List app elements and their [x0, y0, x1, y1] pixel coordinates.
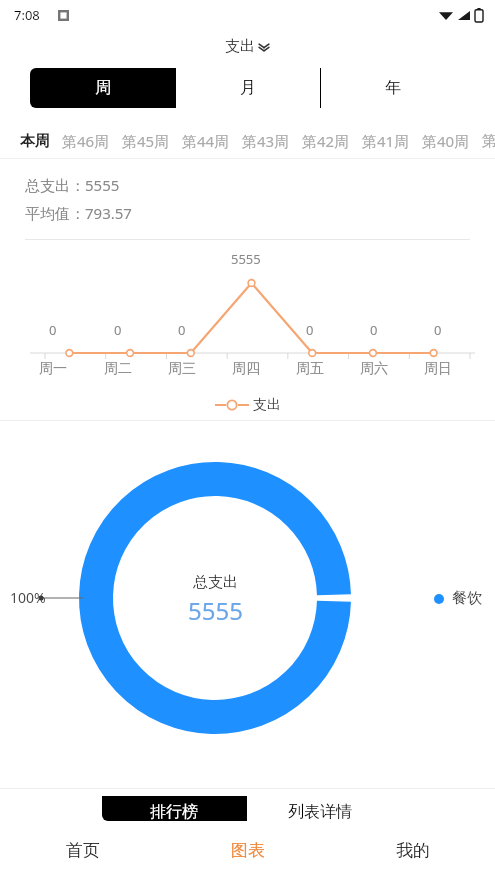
staticText: 第45周: [122, 131, 170, 151]
staticText: 周二: [104, 360, 132, 378]
staticText: 列表详情: [288, 802, 352, 821]
button[interactable]: 第45周: [116, 124, 176, 158]
staticText: 周三: [168, 360, 196, 378]
button[interactable]: 首页: [0, 821, 165, 880]
staticText: 周五: [296, 360, 324, 378]
staticText: 第: [482, 132, 489, 151]
button[interactable]: 第43周: [236, 124, 296, 158]
staticText: 第43周: [242, 131, 290, 151]
staticText: 0: [178, 321, 186, 339]
button[interactable]: 第46周: [56, 124, 116, 158]
staticText: 图表: [231, 840, 265, 861]
button[interactable]: 我的: [330, 821, 495, 880]
staticText: 0: [370, 321, 378, 339]
staticText: 周一: [39, 360, 67, 378]
staticText: 排行榜: [150, 802, 198, 821]
button[interactable]: 餐饮: [434, 589, 482, 608]
staticText: 0: [114, 321, 122, 339]
staticText: 第40周: [422, 131, 470, 151]
staticText: 5555: [231, 250, 261, 268]
staticText: 周六: [360, 360, 388, 378]
staticText: 首页: [66, 840, 100, 861]
button[interactable]: 列表详情: [247, 796, 392, 821]
button[interactable]: 支出: [215, 396, 281, 414]
staticText: 100%: [10, 588, 46, 607]
button[interactable]: 第42周: [296, 124, 356, 158]
staticText: 餐饮: [452, 589, 482, 608]
button[interactable]: 第41周: [356, 124, 416, 158]
staticText: 0: [49, 321, 57, 339]
staticText: 周: [95, 78, 111, 98]
button[interactable]: 本周: [14, 124, 56, 158]
button[interactable]: 年: [321, 68, 465, 108]
staticText: 支出: [225, 37, 255, 56]
staticText: 5555: [188, 594, 243, 627]
staticText: 第42周: [302, 131, 350, 151]
button[interactable]: 月: [176, 68, 320, 108]
button[interactable]: 排行榜: [102, 796, 246, 821]
button[interactable]: 第: [476, 124, 495, 158]
staticText: 总支出: [193, 573, 238, 592]
staticText: 我的: [396, 840, 430, 861]
staticText: 年: [385, 78, 401, 98]
staticText: 0: [306, 321, 314, 339]
button[interactable]: 图表: [165, 821, 330, 880]
staticText: 月: [240, 78, 256, 98]
staticText: 支出: [253, 396, 281, 414]
button[interactable]: 支出: [217, 35, 279, 58]
staticText: 总支出：5555: [25, 175, 120, 195]
staticText: 周日: [424, 360, 452, 378]
staticText: 周四: [232, 360, 260, 378]
button[interactable]: 第44周: [176, 124, 236, 158]
button[interactable]: 周: [30, 68, 175, 108]
staticText: 第44周: [182, 131, 230, 151]
button[interactable]: 第40周: [416, 124, 476, 158]
staticText: 第46周: [62, 131, 110, 151]
staticText: 本周: [20, 132, 50, 151]
staticText: 平均值：793.57: [25, 203, 132, 223]
staticText: 7:08: [14, 6, 40, 24]
staticText: 0: [434, 321, 442, 339]
staticText: 第41周: [362, 131, 410, 151]
